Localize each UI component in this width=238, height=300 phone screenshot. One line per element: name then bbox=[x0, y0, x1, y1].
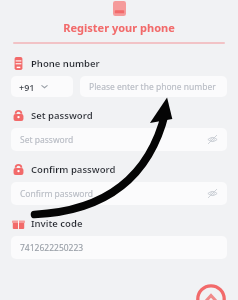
button[interactable]: Toggle password visibility bbox=[207, 134, 218, 145]
button[interactable]: 7412622250223 bbox=[11, 236, 227, 259]
staticText: Register your phone bbox=[0, 20, 238, 35]
staticText: Invite code bbox=[31, 217, 83, 230]
button[interactable]: Confirm password bbox=[11, 182, 227, 205]
staticText: Confirm password bbox=[20, 188, 207, 200]
staticText: Set password bbox=[20, 134, 207, 146]
button[interactable]: +91 bbox=[11, 76, 73, 97]
staticText: +91 bbox=[19, 81, 35, 93]
button[interactable]: Please enter the phone number bbox=[80, 76, 227, 97]
other: Support bbox=[196, 284, 226, 300]
staticText: Confirm password bbox=[31, 163, 116, 176]
staticText: Phone number bbox=[31, 57, 100, 70]
button[interactable]: Set password bbox=[11, 128, 227, 151]
staticText: 7412622250223 bbox=[20, 242, 84, 254]
staticText: Set password bbox=[31, 109, 93, 122]
staticText: Please enter the phone number bbox=[89, 81, 216, 93]
button[interactable]: Toggle password visibility bbox=[207, 188, 218, 199]
